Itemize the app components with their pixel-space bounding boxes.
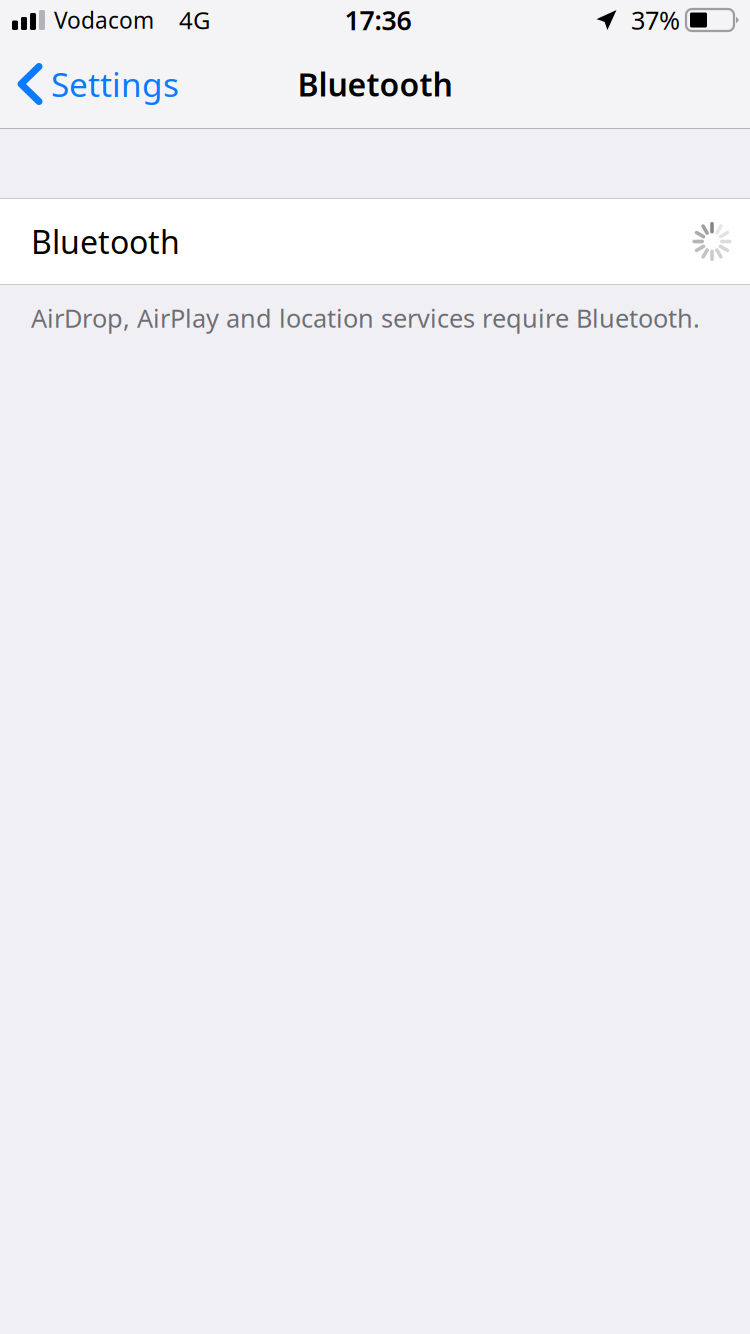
staticText: Bluetooth: [297, 63, 452, 105]
staticText: Bluetooth: [31, 220, 180, 263]
button[interactable]: Back to Settings: [0, 40, 191, 128]
staticText: Settings: [51, 62, 179, 106]
staticText: Vodacom: [54, 5, 154, 35]
staticText: 37%: [631, 3, 680, 37]
staticText: 4G: [179, 4, 210, 36]
staticText: AirDrop, AirPlay and location services r…: [31, 301, 700, 335]
button[interactable]: Bluetooth: [0, 199, 750, 284]
staticText: 17:36: [344, 2, 411, 38]
